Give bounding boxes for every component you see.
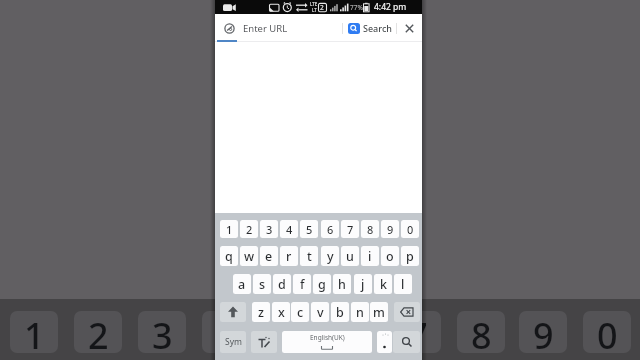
button[interactable]: k [374,274,392,294]
button[interactable]: 2 [240,220,258,238]
staticText: 77% [350,3,363,12]
staticText: 4 [216,311,237,353]
staticText: 4 [286,222,293,237]
button[interactable]: 7 [341,220,359,238]
staticText: q [225,248,233,265]
staticText: s [259,276,266,293]
staticText: l [401,276,405,293]
button[interactable]: 3 [260,220,278,238]
staticText: 4:42 pm [374,1,407,13]
staticText: 1 [24,311,45,353]
staticText: 7 [407,311,428,353]
staticText: n [356,304,364,321]
staticText: x [278,304,285,321]
button[interactable] [393,331,420,353]
button[interactable]: p [401,246,419,266]
staticText: Search [363,22,392,34]
button[interactable] [238,16,338,40]
staticText: o [386,248,394,265]
staticText: 3 [152,311,173,353]
button[interactable]: 1 [220,220,238,238]
staticText: w [244,248,255,265]
staticText: v [317,304,324,321]
button[interactable] [402,21,416,35]
staticText: b [336,304,344,321]
staticText: Sym [225,336,242,348]
button[interactable]: t [300,246,318,266]
staticText: h [338,276,346,293]
button[interactable]: 0 [401,220,419,238]
button[interactable]: h [333,274,351,294]
button[interactable] [220,302,246,322]
button[interactable]: s [253,274,271,294]
button[interactable]: w [240,246,258,266]
button[interactable]: e [260,246,278,266]
staticText: Enter URL [243,22,288,35]
staticText: 0 [407,222,414,237]
button[interactable]: f [293,274,311,294]
button[interactable]: g [313,274,331,294]
button[interactable] [394,302,420,322]
staticText: 2 [88,311,109,353]
button[interactable]: o [381,246,399,266]
staticText: j [361,276,365,293]
staticText: i [368,248,372,265]
staticText: 1 [226,222,233,237]
staticText: f [300,276,305,293]
staticText: LTE [310,1,318,7]
button[interactable]: 9 [381,220,399,238]
staticText: g [318,276,326,293]
button[interactable]: c [291,302,309,322]
button[interactable]: m [370,302,388,322]
staticText: m [373,304,385,321]
staticText: t [307,248,312,265]
button[interactable]: l [394,274,412,294]
staticText: y [327,248,334,265]
staticText: a [238,276,246,293]
button[interactable]: q [220,246,238,266]
staticText: 3 [266,222,273,237]
button[interactable]: u [341,246,359,266]
staticText: p [406,248,414,265]
staticText: r [286,248,292,265]
button[interactable] [251,331,277,353]
staticText: 6 [327,222,334,237]
button[interactable] [377,331,392,353]
staticText: d [278,276,286,293]
button[interactable]: Sym [220,331,246,353]
staticText: 9 [533,311,554,353]
button[interactable]: n [351,302,369,322]
button[interactable]: d [273,274,291,294]
button[interactable]: v [311,302,329,322]
staticText: u [346,248,354,265]
staticText: z [258,304,264,321]
staticText: 5 [306,222,313,237]
button[interactable]: x [272,302,290,322]
button[interactable]: English(UK) [282,331,372,353]
button[interactable]: 4 [280,220,298,238]
button[interactable]: r [280,246,298,266]
button[interactable]: i [361,246,379,266]
staticText: 2 [246,222,253,237]
button[interactable]: 8 [361,220,379,238]
button[interactable]: a [233,274,251,294]
staticText: 8 [367,222,374,237]
button[interactable]: z [252,302,270,322]
staticText: 0 [597,311,618,353]
staticText: e [265,248,273,265]
staticText: 7 [347,222,354,237]
staticText: k [380,276,387,293]
button[interactable] [346,21,406,36]
button[interactable]: 6 [321,220,339,238]
staticText: 8 [471,311,492,353]
button[interactable]: 5 [300,220,318,238]
staticText: c [297,304,304,321]
button[interactable]: y [321,246,339,266]
staticText: 9 [387,222,394,237]
staticText: 2 [320,3,324,12]
button[interactable]: b [331,302,349,322]
staticText: LT [312,7,317,13]
button[interactable]: j [354,274,372,294]
staticText: English(UK) [310,333,345,342]
